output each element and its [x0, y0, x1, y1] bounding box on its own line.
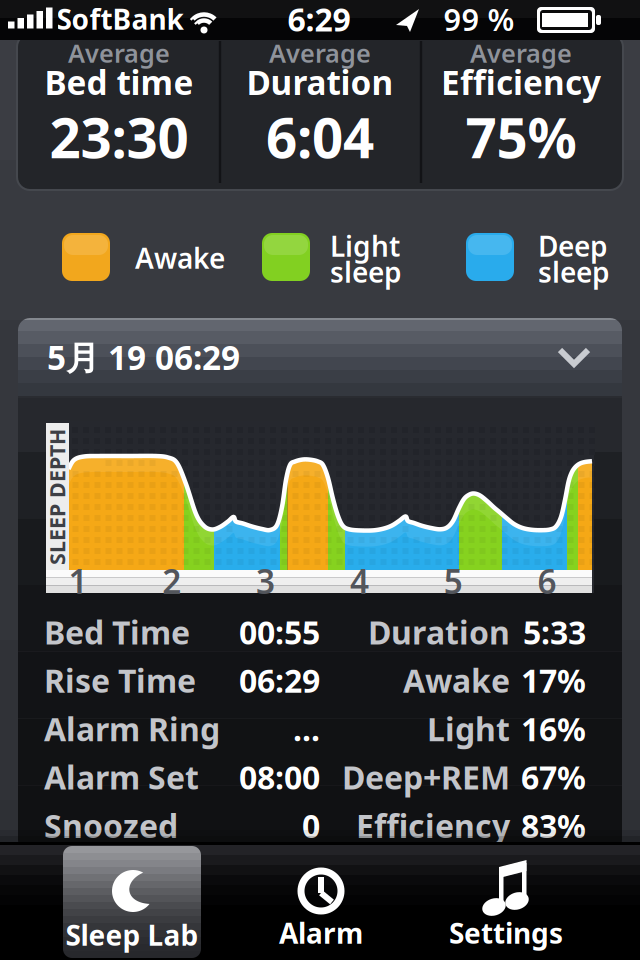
staticText: Bed Time: [44, 611, 190, 653]
staticText: Duration: [368, 611, 510, 653]
staticText: sleep: [330, 253, 402, 291]
staticText: 5: [444, 559, 463, 603]
staticText: Light: [330, 227, 400, 265]
staticText: Snoozed: [44, 804, 178, 847]
staticText: 67%: [521, 756, 586, 798]
staticText: Deep: [538, 227, 608, 265]
staticText: Duration: [246, 60, 393, 104]
staticText: Efficiency: [441, 60, 601, 104]
staticText: Awake: [403, 659, 510, 702]
staticText: SLEEP DEPTH: [0, 483, 125, 511]
staticText: Awake: [135, 239, 225, 277]
staticText: 06:29: [239, 659, 320, 702]
staticText: Alarm Set: [44, 756, 199, 798]
staticText: 0: [302, 804, 320, 847]
staticText: 3: [256, 559, 275, 603]
staticText: 08:00: [239, 756, 320, 798]
button[interactable]: Settings: [421, 842, 591, 960]
staticText: Bed time: [44, 60, 193, 104]
staticText: 17%: [521, 659, 586, 702]
staticText: 99 %: [443, 0, 514, 39]
staticText: 6:29: [287, 0, 350, 40]
staticText: Average: [470, 36, 572, 70]
staticText: 5月 19: [47, 335, 146, 379]
staticText: Average: [68, 36, 170, 70]
staticText: 6:04: [266, 101, 374, 173]
staticText: 5:33: [523, 611, 586, 653]
staticText: Light: [427, 708, 510, 750]
staticText: ...: [293, 708, 320, 750]
staticText: 4: [350, 559, 369, 603]
staticText: Efficiency: [356, 804, 510, 847]
staticText: Deep+REM: [342, 756, 510, 798]
button[interactable]: Alarm: [236, 842, 406, 960]
staticText: 6: [537, 559, 556, 603]
staticText: 16%: [521, 708, 586, 750]
staticText: 75%: [465, 101, 576, 173]
staticText: Alarm Ring: [44, 708, 220, 750]
button[interactable]: 5月 19: [18, 318, 622, 396]
staticText: sleep: [538, 253, 610, 291]
staticText: Rise Time: [44, 659, 196, 702]
staticText: SoftBank: [56, 0, 183, 38]
staticText: Alarm: [279, 914, 363, 952]
staticText: 06:29: [155, 335, 240, 379]
staticText: 00:55: [239, 611, 320, 653]
staticText: Sleep Lab: [65, 916, 198, 954]
staticText: 2: [162, 559, 181, 603]
staticText: 83%: [521, 804, 586, 847]
staticText: Settings: [449, 914, 563, 952]
staticText: Average: [269, 36, 371, 70]
button[interactable]: Sleep Lab: [63, 846, 201, 958]
staticText: 23:30: [49, 101, 188, 173]
staticText: 1: [68, 559, 87, 603]
